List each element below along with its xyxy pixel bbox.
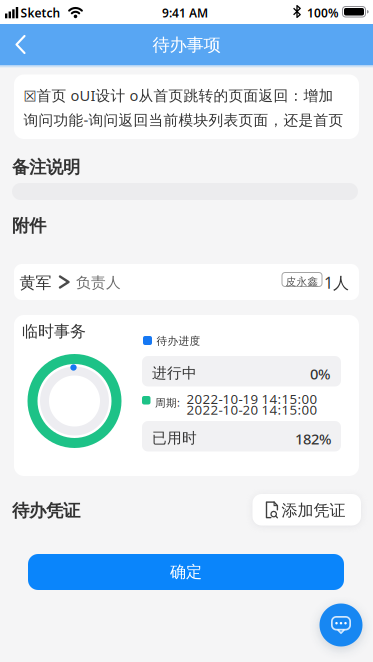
- staticText: 待办凭证: [12, 500, 80, 521]
- button[interactable]: 返回: [0, 24, 44, 65]
- staticText: 100%: [307, 5, 339, 21]
- staticText: 确定: [170, 562, 202, 582]
- staticText: 负责人: [76, 273, 121, 291]
- staticText: 9:41 AM: [162, 5, 208, 21]
- staticText: 临时事务: [22, 321, 86, 341]
- staticText: 备注说明: [12, 156, 80, 178]
- staticText: 添加凭证: [281, 500, 345, 520]
- staticText: 询问功能-询问返回当前模块列表页面，还是首页: [23, 110, 343, 129]
- staticText: 周期:: [155, 395, 180, 410]
- staticText: 待办进度: [156, 334, 200, 348]
- staticText: 2022-10-19 14:15:00: [186, 390, 317, 408]
- staticText: 黄军: [19, 273, 51, 293]
- staticText: 进行中: [152, 364, 197, 382]
- staticText: 2022-10-20 14:15:00: [186, 401, 317, 418]
- button[interactable]: 客服: [319, 603, 362, 646]
- staticText: 附件: [12, 215, 46, 236]
- staticText: 已用时: [152, 429, 197, 447]
- staticText: 皮永鑫: [285, 275, 318, 288]
- staticText: 0%: [310, 364, 330, 383]
- staticText: 1人: [324, 272, 349, 293]
- staticText: 182%: [295, 429, 331, 448]
- button[interactable]: 黄军: [14, 264, 359, 300]
- button[interactable]: 添加凭证: [252, 494, 361, 525]
- staticText: 待办事项: [152, 34, 220, 56]
- staticText: Sketch: [20, 5, 60, 21]
- staticText: ☒首页 oUI设计 o从首页跳转的页面返回：增加: [23, 85, 333, 105]
- button[interactable]: 确定: [28, 554, 344, 590]
